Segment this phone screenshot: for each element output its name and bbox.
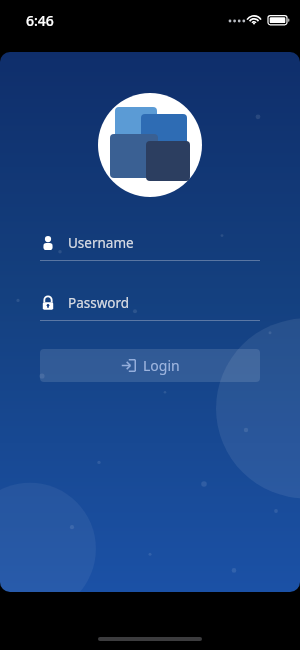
staticText: Password bbox=[68, 294, 130, 312]
button[interactable]: Username bbox=[40, 234, 260, 261]
staticText: Login bbox=[143, 356, 180, 375]
staticText: Username bbox=[68, 234, 134, 252]
button[interactable]: Login bbox=[40, 349, 260, 382]
button[interactable]: Password bbox=[40, 294, 260, 321]
staticText: 6:46 bbox=[26, 11, 54, 30]
